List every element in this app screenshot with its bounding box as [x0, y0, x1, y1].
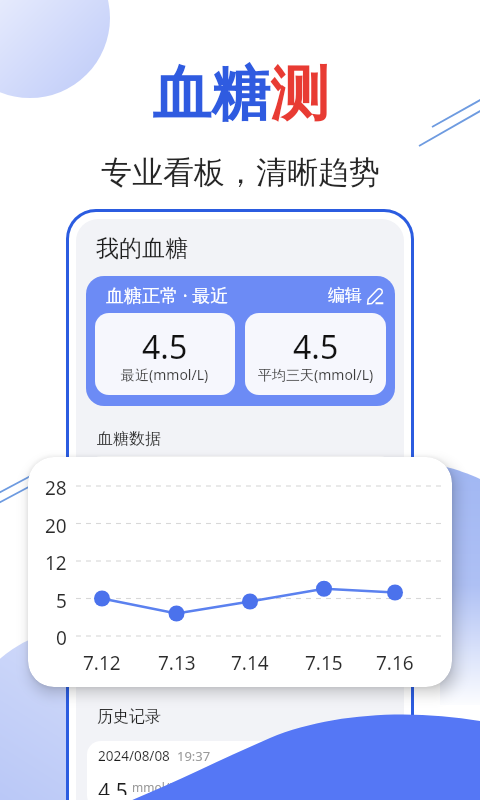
staticText: 7.14 — [231, 650, 269, 676]
staticText: 4.5 — [98, 777, 128, 795]
staticText: 血糖数据 — [97, 429, 161, 449]
staticText: 2024/08/08 — [98, 747, 170, 765]
staticText: 血糖正常 · 最近 — [106, 283, 229, 308]
staticText: 12 — [45, 550, 67, 576]
staticText: 5 — [56, 588, 67, 614]
staticText: 4.5 — [293, 325, 339, 369]
staticText: mmol/L — [132, 779, 176, 795]
staticText: 7.15 — [305, 650, 343, 676]
staticText: 血糖 — [152, 57, 270, 131]
staticText: 编辑 — [328, 285, 362, 306]
staticText: 平均三天(mmol/L) — [258, 365, 374, 384]
staticText: 测 — [270, 57, 329, 131]
staticText: 28 — [45, 475, 67, 501]
staticText: 我的血糖 — [96, 234, 188, 263]
button[interactable]: 编辑 — [328, 285, 384, 306]
button[interactable]: 2024/08/08 — [87, 741, 394, 800]
staticText: 4.5 — [142, 325, 188, 369]
button[interactable]: 4.5 — [245, 313, 386, 395]
staticText: 历史记录 — [97, 707, 161, 727]
button[interactable]: 4.5 — [95, 313, 235, 395]
other: Edit — [367, 287, 384, 304]
staticText: 7.13 — [158, 650, 196, 676]
staticText: 19:37 — [177, 747, 211, 765]
staticText: 0 — [56, 625, 67, 651]
staticText: 7.16 — [376, 650, 414, 676]
staticText: 7.12 — [83, 650, 121, 676]
staticText: 专业看板，清晰趋势 — [101, 153, 380, 192]
staticText: 20 — [45, 513, 67, 539]
staticText: 最近(mmol/L) — [121, 365, 209, 384]
